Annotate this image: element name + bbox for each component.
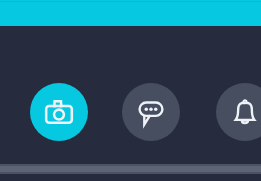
- button[interactable]: Notifications: [216, 83, 261, 141]
- button[interactable]: Messages: [122, 83, 180, 141]
- button[interactable]: Camera: [30, 83, 88, 141]
